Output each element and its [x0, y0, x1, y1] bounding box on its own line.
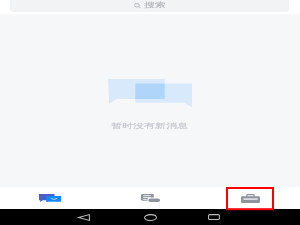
- staticText: 暂时没有新消息: [111, 122, 188, 130]
- button[interactable]: 搜索: [10, 0, 289, 12]
- button[interactable]: Recent apps: [201, 209, 227, 225]
- button[interactable]: Messages: [0, 187, 100, 209]
- staticText: 搜索: [144, 1, 166, 9]
- button[interactable]: Workbench: [200, 187, 300, 209]
- button[interactable]: Back: [71, 209, 96, 225]
- button[interactable]: Contacts: [100, 187, 200, 209]
- button[interactable]: Home: [137, 209, 163, 225]
